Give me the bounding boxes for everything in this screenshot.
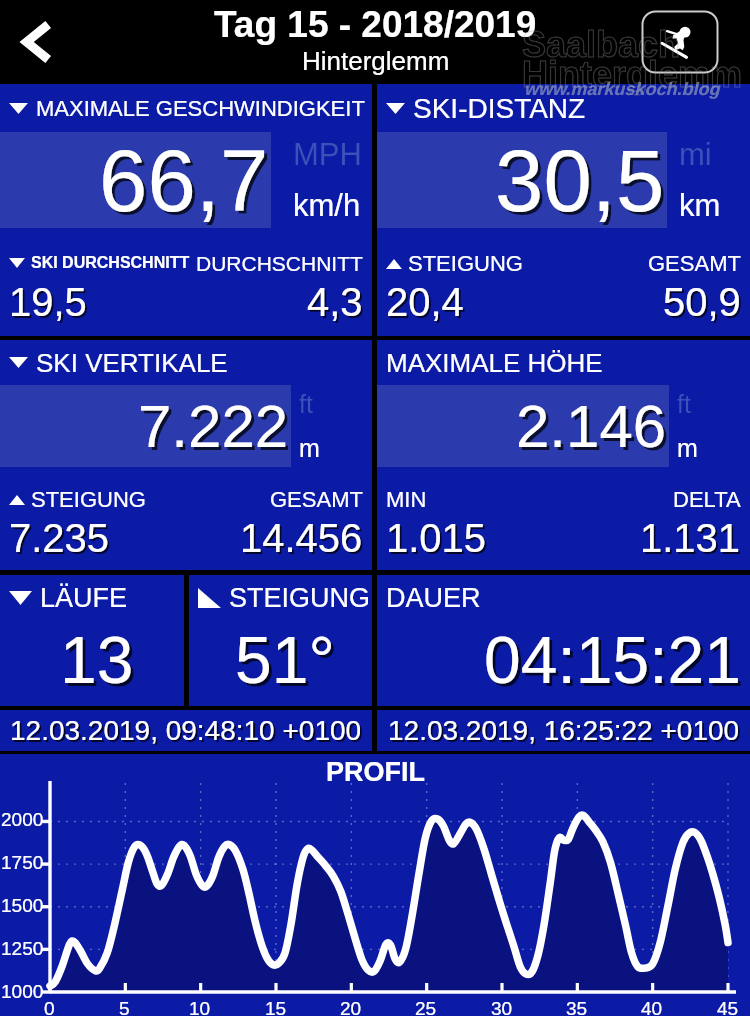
staticText: STEIGUNG [408, 251, 523, 276]
button[interactable]: SKI VERTIKALE [0, 340, 372, 570]
staticText: 2.146 [516, 393, 667, 460]
staticText: km [679, 188, 721, 223]
staticText: 13 [63, 626, 137, 700]
staticText: 12.03.2019, 16:25:22 +0100 [388, 715, 740, 746]
staticText: 51° [238, 626, 338, 700]
staticText: SKI VERTIKALE [36, 348, 228, 377]
staticText: ft [677, 390, 691, 418]
button[interactable]: Resort logo [641, 10, 719, 74]
staticText: 14.456 [242, 518, 365, 563]
staticText: Tag 15 - 2018/2019 [214, 4, 537, 45]
staticText: 14.456 [240, 516, 363, 561]
staticText: mi [679, 137, 712, 172]
staticText: STEIGUNG [229, 583, 371, 613]
staticText: 4,3 [309, 282, 365, 327]
staticText: 19,5 [9, 280, 87, 325]
staticText: 45 [717, 998, 739, 1016]
button[interactable]: Back [6, 11, 68, 73]
staticText: 1.131 [642, 518, 743, 563]
staticText: 13 [60, 623, 134, 697]
staticText: STEIGUNG [31, 487, 146, 512]
staticText: 1.015 [386, 516, 487, 561]
staticText: 10 [189, 998, 211, 1016]
staticText: 25 [415, 998, 437, 1016]
staticText: 04:15:21 [487, 626, 744, 700]
staticText: 30 [491, 998, 513, 1016]
staticText: 50,9 [665, 282, 743, 327]
staticText: 1250 [1, 938, 44, 959]
staticText: GESAMT [270, 487, 363, 512]
staticText: m [677, 434, 698, 462]
staticText: MAXIMALE HÖHE [386, 348, 603, 377]
staticText: 1.015 [388, 518, 489, 563]
staticText: m [299, 434, 320, 462]
staticText: GESAMT [648, 251, 741, 276]
button[interactable]: MAXIMALE GESCHWINDIGKEIT [0, 84, 372, 336]
staticText: MIN [386, 487, 427, 512]
staticText: MAXIMALE GESCHWINDIGKEIT [36, 96, 365, 121]
button[interactable]: SKI-DISTANZ [377, 84, 750, 336]
staticText: km/h [293, 188, 361, 223]
staticText: 5 [119, 998, 130, 1016]
staticText: 35 [566, 998, 588, 1016]
staticText: 50,9 [663, 280, 741, 325]
staticText: 19,5 [11, 282, 89, 327]
staticText: 66,7 [99, 132, 269, 228]
staticText: DURCHSCHNITT [196, 252, 363, 275]
staticText: 2000 [1, 809, 44, 830]
staticText: 12.03.2019, 09:48:10 +0100 [12, 717, 364, 748]
staticText: ft [299, 390, 313, 418]
staticText: 7.222 [141, 396, 292, 463]
staticText: 1750 [1, 852, 44, 873]
staticText: Hinterglemm [302, 46, 450, 75]
staticText: PROFIL [326, 757, 425, 787]
staticText: 20,4 [386, 280, 464, 325]
staticText: MPH [293, 137, 362, 172]
button[interactable]: MAXIMALE HÖHE [377, 340, 750, 570]
staticText: SKI-DISTANZ [413, 93, 586, 124]
staticText: 12.03.2019, 16:25:22 +0100 [390, 717, 742, 748]
staticText: 04:15:21 [484, 623, 741, 697]
staticText: 51° [235, 623, 335, 697]
staticText: DAUER [386, 583, 481, 613]
staticText: 30,5 [495, 132, 665, 228]
staticText: Saalbach [522, 24, 681, 64]
staticText: 0 [44, 998, 55, 1016]
staticText: 20 [340, 998, 362, 1016]
staticText: 4,3 [307, 280, 363, 325]
staticText: 1000 [1, 981, 44, 1002]
staticText: 2.146 [519, 396, 670, 463]
staticText: 20,4 [388, 282, 466, 327]
staticText: LÄUFE [40, 583, 128, 613]
staticText: Hinterglemm 19 [522, 54, 750, 94]
staticText: 30,5 [498, 135, 668, 231]
staticText: DELTA [673, 487, 741, 512]
staticText: 1500 [1, 895, 44, 916]
staticText: SKI DURCHSCHNITT [31, 254, 190, 272]
staticText: 40 [641, 998, 663, 1016]
staticText: 7.235 [11, 518, 112, 563]
staticText: 66,7 [102, 135, 272, 231]
staticText: 1.131 [640, 516, 741, 561]
staticText: 7.222 [138, 393, 289, 460]
staticText: 15 [265, 998, 287, 1016]
staticText: 7.235 [9, 516, 110, 561]
staticText: www.markuskoch.blog [524, 79, 720, 99]
staticText: 12.03.2019, 09:48:10 +0100 [10, 715, 362, 746]
